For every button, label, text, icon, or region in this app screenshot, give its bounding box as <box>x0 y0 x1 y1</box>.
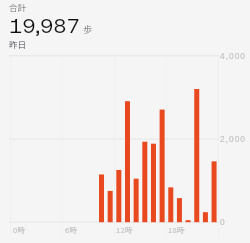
staticText: 2,000 <box>220 134 247 143</box>
staticText: 合計 <box>9 1 27 13</box>
staticText: 4,000 <box>220 51 247 60</box>
staticText: 昨日 <box>9 38 27 50</box>
staticText: 12時 <box>116 224 133 235</box>
staticText: 歩 <box>83 23 93 36</box>
staticText: 0時 <box>13 224 26 235</box>
staticText: 0 <box>220 217 226 226</box>
staticText: 6時 <box>65 224 78 235</box>
button[interactable]: Hourly step chart <box>0 0 250 243</box>
staticText: 19,987 <box>9 12 80 39</box>
staticText: 18時 <box>168 224 185 235</box>
